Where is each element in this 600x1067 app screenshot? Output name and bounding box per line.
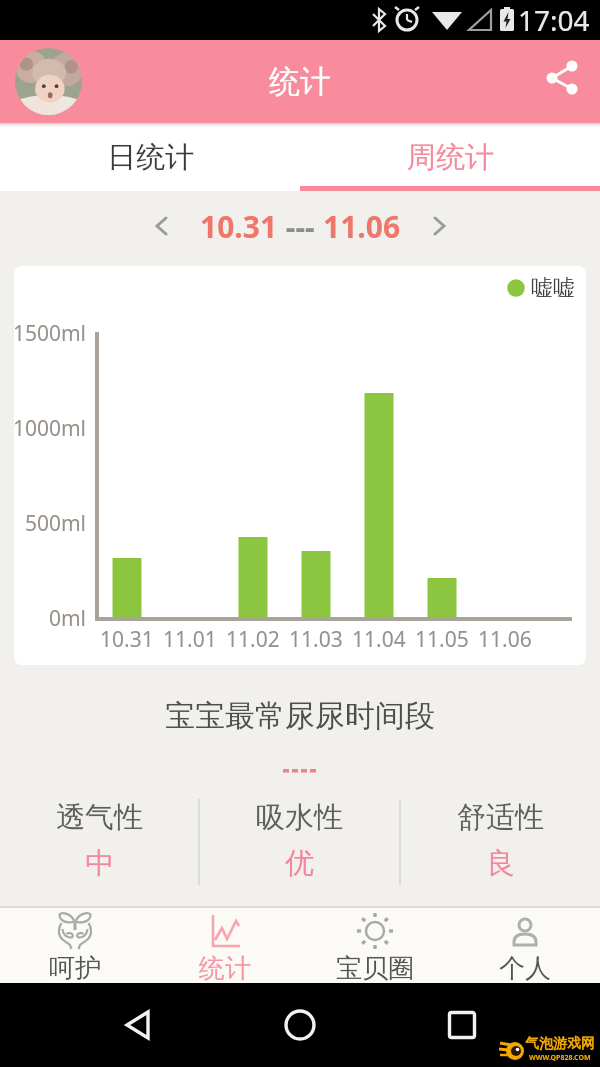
staticText: 11.01 xyxy=(163,625,217,649)
staticText: 统计 xyxy=(199,952,251,983)
staticText: 11.02 xyxy=(226,625,280,649)
staticText: 周统计 xyxy=(407,139,494,176)
button[interactable]: 透气性 xyxy=(0,799,198,885)
button[interactable] xyxy=(543,60,587,104)
button[interactable]: 舒适性 xyxy=(401,799,600,885)
staticText: 11.03 xyxy=(289,625,343,649)
staticText: 宝宝最常尿尿时间段 xyxy=(165,697,435,735)
button[interactable]: 宝贝圈 xyxy=(300,908,450,983)
button[interactable]: 统计 xyxy=(150,908,300,983)
staticText: 透气性 xyxy=(56,799,143,836)
staticText: 10.31 xyxy=(200,206,278,247)
staticText: 10.31 xyxy=(100,625,154,649)
staticText: 舒适性 xyxy=(457,799,544,836)
button[interactable] xyxy=(260,995,340,1055)
staticText: 日统计 xyxy=(107,139,194,176)
staticText: 0ml xyxy=(48,604,86,630)
button[interactable] xyxy=(140,204,184,248)
staticText: --- xyxy=(278,206,323,247)
button[interactable] xyxy=(98,995,178,1055)
staticText: 统计 xyxy=(269,62,331,101)
staticText: 11.06 xyxy=(323,206,401,247)
staticText: 1500ml xyxy=(14,319,86,345)
button[interactable]: 呵护 xyxy=(0,908,150,983)
staticText: 11.05 xyxy=(415,625,469,649)
staticText: 17:04 xyxy=(518,1,590,39)
button[interactable] xyxy=(422,995,502,1055)
staticText: 11.06 xyxy=(478,625,532,649)
button[interactable]: 日统计 xyxy=(0,123,300,191)
staticText: 500ml xyxy=(24,509,86,535)
staticText: 1000ml xyxy=(14,414,86,440)
staticText: 个人 xyxy=(499,952,551,983)
button[interactable] xyxy=(417,204,461,248)
staticText: 中 xyxy=(85,845,114,882)
button[interactable]: 周统计 xyxy=(300,123,600,191)
staticText: 呵护 xyxy=(49,952,101,983)
staticText: 嘘嘘 xyxy=(531,274,575,302)
staticText: WWW.QP828.COM xyxy=(529,1053,591,1063)
staticText: 气泡游戏网 xyxy=(525,1035,595,1053)
staticText: 宝贝圈 xyxy=(336,952,414,983)
staticText: 良 xyxy=(486,845,515,882)
button[interactable]: 个人 xyxy=(450,908,600,983)
staticText: 11.04 xyxy=(352,625,406,649)
button[interactable] xyxy=(15,48,82,115)
staticText: 优 xyxy=(285,845,314,882)
staticText: 吸水性 xyxy=(256,799,343,836)
button[interactable]: 吸水性 xyxy=(200,799,399,885)
